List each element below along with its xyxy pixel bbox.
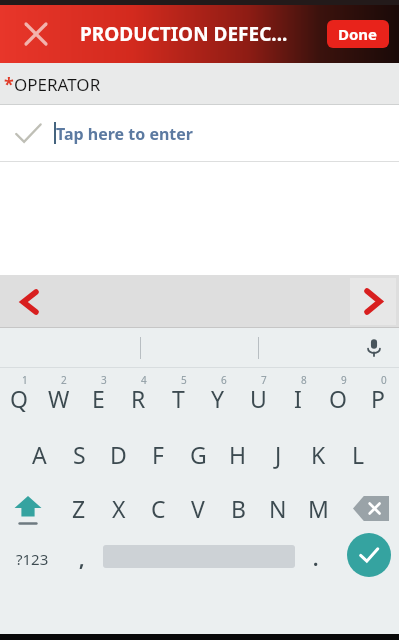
button[interactable]: S (59, 428, 99, 480)
button[interactable]: T (158, 371, 198, 425)
button[interactable]: E (78, 371, 118, 425)
button[interactable]: W (39, 371, 79, 425)
staticText: * (4, 72, 14, 97)
button[interactable]: O (318, 371, 358, 425)
staticText: Z (72, 493, 86, 524)
staticText: 4 (141, 373, 147, 387)
staticText: , (79, 546, 85, 572)
staticText: E (92, 383, 105, 414)
button[interactable]: V (178, 483, 218, 533)
staticText: W (48, 383, 70, 414)
staticText: Done (338, 24, 378, 44)
button[interactable]: Z (59, 483, 99, 533)
button[interactable]: H (218, 428, 258, 480)
staticText: G (190, 439, 207, 470)
button[interactable]: Done (327, 20, 389, 48)
button[interactable]: Shift (2, 483, 54, 533)
button[interactable]: N (258, 483, 298, 533)
button[interactable]: F (138, 428, 178, 480)
button[interactable]: Next (350, 278, 396, 325)
button[interactable]: Tap here to enter (0, 105, 399, 162)
staticText: 6 (221, 373, 227, 387)
button[interactable]: B (218, 483, 258, 533)
button[interactable]: Y (198, 371, 238, 425)
staticText: D (110, 439, 127, 470)
staticText: A (32, 439, 47, 470)
staticText: B (231, 493, 246, 524)
staticText: T (172, 383, 185, 414)
button[interactable]: Enter (347, 533, 391, 577)
button[interactable]: P (358, 371, 398, 425)
staticText: 8 (301, 373, 307, 387)
staticText: R (131, 383, 146, 414)
staticText: 1 (22, 373, 28, 387)
button[interactable]: A (19, 428, 59, 480)
button[interactable]: R (118, 371, 158, 425)
staticText: H (229, 439, 247, 470)
button[interactable]: Backspace (345, 483, 397, 533)
staticText: ?123 (16, 549, 49, 569)
staticText: U (250, 383, 267, 414)
staticText: OPERATOR (14, 73, 101, 96)
button[interactable]: Voice input (359, 333, 389, 363)
button[interactable]: I (278, 371, 318, 425)
staticText: I (294, 383, 302, 414)
staticText: F (152, 439, 164, 470)
staticText: O (329, 383, 347, 414)
staticText: V (191, 493, 205, 524)
button[interactable]: . (296, 536, 336, 582)
button[interactable]: ?123 (2, 536, 62, 582)
staticText: 3 (101, 373, 107, 387)
staticText: 2 (61, 373, 67, 387)
button[interactable]: L (338, 428, 378, 480)
staticText: M (308, 493, 329, 524)
staticText: K (311, 439, 326, 470)
staticText: L (352, 439, 365, 470)
staticText: S (73, 439, 86, 470)
staticText: 0 (381, 373, 387, 387)
staticText: N (269, 493, 287, 524)
button[interactable]: G (178, 428, 218, 480)
button[interactable]: D (98, 428, 138, 480)
button[interactable]: X (99, 483, 139, 533)
button[interactable]: M (298, 483, 338, 533)
staticText: 7 (261, 373, 267, 387)
button[interactable]: U (238, 371, 278, 425)
staticText: PRODUCTION DEFEC... (80, 21, 288, 47)
button[interactable]: Q (0, 371, 39, 425)
staticText: 5 (181, 373, 187, 387)
staticText: 9 (341, 373, 347, 387)
button[interactable]: , (62, 536, 102, 582)
staticText: Q (10, 383, 28, 414)
button[interactable]: C (138, 483, 178, 533)
staticText: C (151, 493, 166, 524)
staticText: J (275, 439, 282, 470)
button[interactable]: Close (16, 14, 56, 54)
staticText: Y (211, 383, 225, 414)
staticText: . (313, 546, 319, 572)
button[interactable]: K (298, 428, 338, 480)
button[interactable]: Previous (8, 280, 52, 324)
staticText: X (112, 493, 126, 524)
staticText: P (371, 383, 385, 414)
staticText: Tap here to enter (56, 123, 194, 145)
button[interactable]: J (258, 428, 298, 480)
